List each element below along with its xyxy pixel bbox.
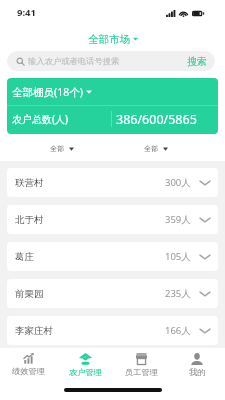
staticText: 全部 xyxy=(50,144,64,153)
staticText: 北于村 xyxy=(15,214,44,226)
staticText: 全部 xyxy=(144,144,158,153)
button[interactable]: 全部 xyxy=(144,135,168,162)
staticText: 葛庄 xyxy=(15,251,34,263)
button[interactable]: 绩效管理 xyxy=(0,348,57,400)
button[interactable]: 李家庄村 xyxy=(7,316,218,345)
staticText: 全部市场 xyxy=(88,33,130,45)
button[interactable]: 全部棚员(18个) xyxy=(7,78,218,105)
staticText: 员工管理 xyxy=(125,367,158,377)
staticText: 农户总数(人) xyxy=(12,112,68,126)
staticText: 166人 xyxy=(165,324,191,337)
staticText: 搜索 xyxy=(187,55,207,68)
staticText: 李家庄村 xyxy=(15,325,53,337)
button[interactable]: 前栗园 xyxy=(7,279,218,308)
button[interactable]: 员工管理 xyxy=(113,348,169,400)
button[interactable]: 输入农户或者电话号搜索 xyxy=(7,51,181,71)
staticText: 9:41 xyxy=(17,6,36,19)
button[interactable]: 葛庄 xyxy=(7,242,218,271)
staticText: 全部棚员(18个) xyxy=(12,85,83,99)
button[interactable]: 全部 xyxy=(50,135,74,162)
button[interactable]: 搜索 xyxy=(181,51,215,71)
staticText: 386/600/5865 xyxy=(116,111,197,128)
staticText: 我的 xyxy=(189,367,206,377)
button[interactable]: 我的 xyxy=(169,348,225,400)
staticText: 105人 xyxy=(165,250,191,263)
button[interactable]: 全部市场 xyxy=(88,33,138,45)
staticText: 农户管理 xyxy=(69,367,102,377)
staticText: 359人 xyxy=(165,213,191,226)
staticText: 235人 xyxy=(165,287,191,300)
staticText: 输入农户或者电话号搜索 xyxy=(28,56,120,66)
staticText: 联营村 xyxy=(15,177,44,189)
staticText: 前栗园 xyxy=(15,288,44,300)
staticText: 300人 xyxy=(165,176,191,189)
button[interactable]: 北于村 xyxy=(7,205,218,234)
button[interactable]: 农户管理 xyxy=(57,348,113,400)
staticText: 绩效管理 xyxy=(12,366,45,376)
button[interactable]: 联营村 xyxy=(7,168,218,197)
